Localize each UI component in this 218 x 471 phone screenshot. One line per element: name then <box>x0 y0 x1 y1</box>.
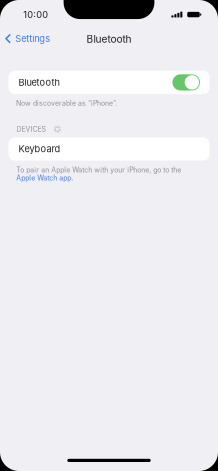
staticText: Apple Watch app. <box>16 174 73 182</box>
staticText: Keyboard <box>18 143 60 154</box>
staticText: Bluetooth <box>86 33 131 45</box>
button[interactable]: Apple Watch app. <box>16 174 73 182</box>
button[interactable]: Settings <box>0 33 50 44</box>
button[interactable]: Bluetooth <box>8 71 209 94</box>
staticText: 10:00 <box>23 9 48 20</box>
staticText: Bluetooth <box>18 77 59 88</box>
staticText: DEVICES <box>16 125 45 133</box>
staticText: To pair an Apple Watch with your iPhone,… <box>16 166 181 174</box>
button[interactable]: Keyboard <box>8 137 209 161</box>
staticText: Now discoverable as “iPhone”. <box>16 99 117 107</box>
staticText: Settings <box>15 33 50 44</box>
